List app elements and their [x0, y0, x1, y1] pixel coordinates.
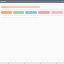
button[interactable]: Profile	[48, 62, 64, 64]
button[interactable]: Home	[0, 62, 16, 64]
button[interactable]	[1, 11, 12, 14]
button[interactable]: Library	[32, 62, 48, 64]
button[interactable]	[1, 6, 40, 8]
button[interactable]	[25, 11, 37, 14]
button[interactable]: Search	[16, 62, 32, 64]
button[interactable]	[51, 11, 63, 14]
button[interactable]	[38, 11, 50, 14]
button[interactable]	[13, 11, 24, 14]
